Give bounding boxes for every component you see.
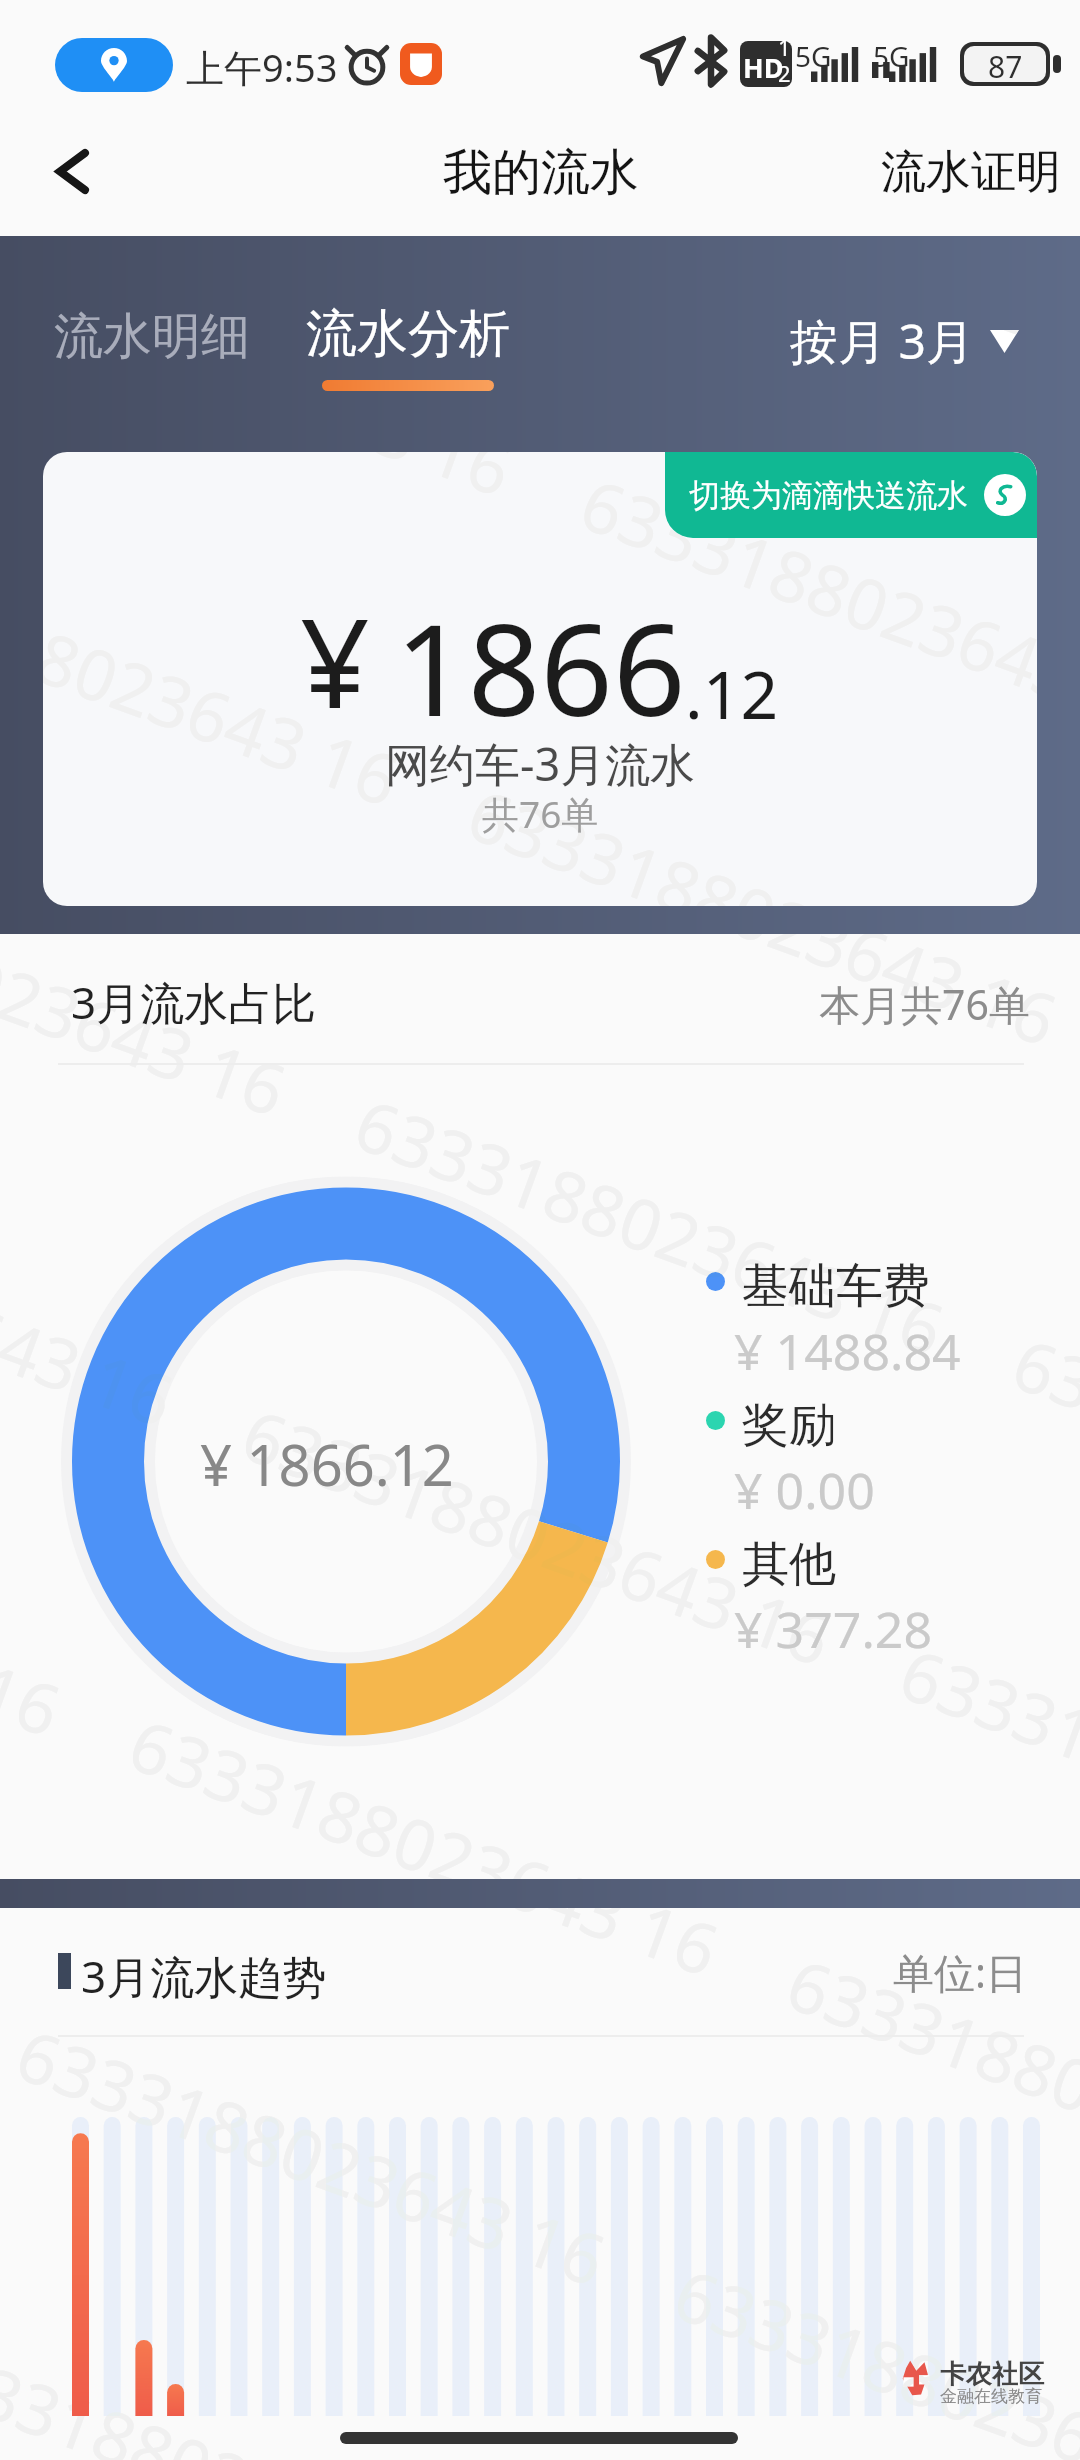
staticText: 网约车-3月流水 (385, 733, 696, 794)
staticText: 1 (778, 32, 791, 62)
button[interactable]: 流水明细 (54, 306, 250, 368)
staticText: 基础车费 (742, 1257, 930, 1316)
staticText: 87 (988, 46, 1023, 82)
staticText: 3月流水趋势 (81, 1946, 327, 2006)
staticText: ¥ (300, 578, 370, 744)
staticText: 2 (778, 58, 791, 88)
staticText: 本月共76单 (819, 976, 1030, 1032)
staticText: 流水证明 (881, 144, 1061, 201)
staticText: .12 (685, 648, 779, 738)
staticText: 金融在线教育 (940, 2386, 1042, 2407)
staticText: ¥ 1866.12 (200, 1426, 454, 1502)
staticText: 流水明细 (54, 306, 250, 368)
button[interactable]: 流水分析 (306, 302, 510, 391)
staticText: 3月流水占比 (71, 972, 317, 1032)
staticText: HD (743, 49, 784, 86)
button[interactable]: 按月 3月 (790, 308, 1019, 374)
staticText: 流水分析 (306, 302, 510, 366)
staticText: 5G (873, 37, 910, 75)
button[interactable]: 基础车费 (706, 1259, 1036, 1379)
button[interactable]: 流水证明 (859, 124, 1080, 221)
staticText: 5G (795, 37, 832, 75)
staticText: 卡农社区 (940, 2358, 1044, 2391)
button[interactable]: 切换为滴滴快送流水 (665, 452, 1037, 538)
button[interactable]: 返回 (35, 134, 109, 208)
staticText: 单位:日 (893, 1944, 1027, 2000)
staticText: 按月 3月 (790, 308, 974, 374)
staticText: ¥ 1488.84 (734, 1317, 961, 1385)
staticText: ¥ 0.00 (734, 1456, 875, 1524)
button[interactable]: 其他 (706, 1537, 1036, 1657)
button[interactable]: 奖励 (706, 1398, 1036, 1518)
staticText: 共76单 (482, 788, 599, 839)
staticText: 奖励 (742, 1396, 836, 1455)
staticText: 我的流水 (443, 142, 639, 204)
staticText: 上午9:53 (186, 41, 338, 93)
staticText: 其他 (742, 1535, 836, 1594)
staticText: ¥ 377.28 (734, 1595, 932, 1663)
staticText: 切换为滴滴快送流水 (689, 476, 968, 515)
staticText: 1866 (395, 580, 686, 753)
